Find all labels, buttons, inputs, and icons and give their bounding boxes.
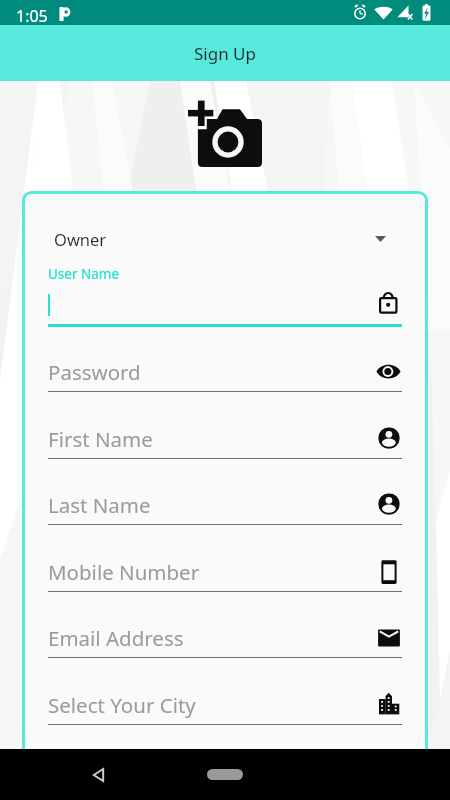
button[interactable]: Email Address	[48, 624, 402, 658]
button[interactable]: Mobile Number	[48, 558, 402, 592]
button[interactable]: User Name	[48, 265, 402, 327]
staticText: User Name	[48, 265, 120, 283]
staticText: Owner	[54, 228, 107, 250]
button[interactable]: Back	[86, 762, 112, 788]
button[interactable]: Select Your City	[48, 691, 402, 725]
button[interactable]: Home	[207, 769, 243, 780]
staticText: Select Your City	[48, 691, 196, 719]
button[interactable]: First Name	[48, 425, 402, 459]
staticText: First Name	[48, 425, 153, 453]
staticText: 1:05	[16, 5, 48, 27]
button[interactable]: Password	[48, 358, 402, 392]
staticText: Email Address	[48, 624, 184, 652]
button[interactable]: Sign Up	[0, 25, 450, 81]
staticText: Mobile Number	[48, 558, 200, 586]
staticText: Last Name	[48, 491, 151, 519]
button[interactable]: Last Name	[48, 491, 402, 525]
staticText: Sign Up	[194, 42, 256, 65]
button[interactable]: Owner	[48, 225, 402, 251]
staticText: Password	[48, 358, 141, 386]
button[interactable]: Add photo	[188, 99, 262, 167]
